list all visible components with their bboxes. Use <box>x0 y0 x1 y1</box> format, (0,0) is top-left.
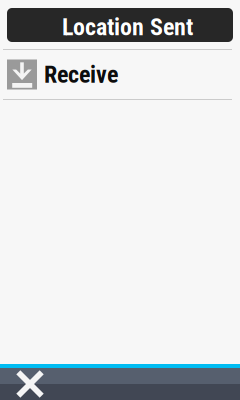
staticText: Location Sent <box>62 13 193 41</box>
staticText: Receive <box>44 60 118 88</box>
button[interactable]: Receive <box>0 50 240 99</box>
button[interactable]: Close <box>0 368 240 400</box>
